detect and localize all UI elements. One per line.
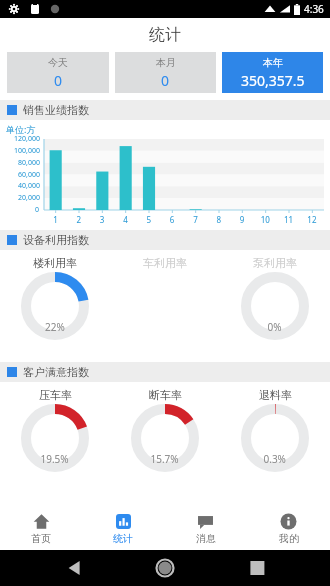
button[interactable] — [110, 408, 220, 464]
staticText: 0 — [54, 71, 63, 90]
staticText: 消息 — [196, 532, 216, 545]
staticText: 压车率 — [39, 388, 72, 402]
staticText: 单位:方 — [6, 123, 36, 135]
staticText: 楼利用率 — [33, 256, 77, 270]
staticText: 车利用率 — [143, 256, 187, 270]
staticText: 今天 — [48, 56, 68, 69]
staticText: 统计 — [149, 25, 181, 45]
staticText: 统计 — [113, 532, 133, 545]
staticText: 退料率 — [259, 388, 292, 402]
button[interactable]: 统计 — [82, 508, 164, 550]
staticText: 本年 — [263, 56, 283, 69]
staticText: 我的 — [279, 532, 299, 545]
button[interactable] — [220, 408, 330, 464]
button[interactable]: 本年 — [222, 52, 323, 93]
button[interactable] — [220, 276, 330, 362]
button[interactable] — [0, 276, 110, 362]
button[interactable] — [0, 408, 110, 464]
staticText: 泵利用率 — [253, 256, 297, 270]
button[interactable]: 我的 — [247, 508, 330, 550]
staticText: 首页 — [31, 532, 51, 545]
staticText: 设备利用指数 — [23, 233, 89, 247]
staticText: 销售业绩指数 — [23, 103, 89, 117]
staticText: 客户满意指数 — [23, 365, 89, 379]
staticText: 断车率 — [149, 388, 182, 402]
staticText: 0 — [161, 71, 170, 90]
button[interactable]: 消息 — [164, 508, 247, 550]
button[interactable]: 本月 — [115, 52, 216, 93]
staticText: 本月 — [156, 56, 176, 69]
staticText: 4:36 — [304, 2, 324, 16]
button[interactable]: 今天 — [7, 52, 109, 93]
button[interactable]: 首页 — [0, 508, 82, 550]
staticText: 350,357.5 — [241, 71, 305, 90]
